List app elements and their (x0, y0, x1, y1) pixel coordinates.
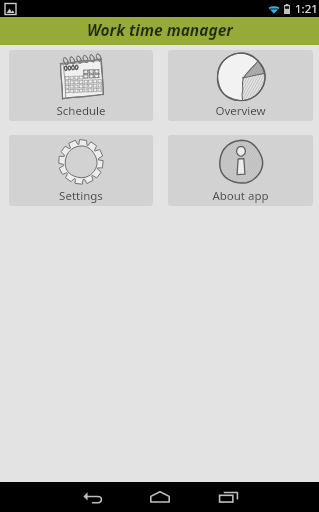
button[interactable]: Back (58, 482, 126, 512)
staticText: About app (212, 188, 269, 204)
staticText: Work time manager (87, 19, 233, 40)
button[interactable]: About app (168, 135, 313, 206)
button[interactable]: Schedule (9, 50, 153, 121)
staticText: 1:21 (295, 1, 318, 17)
staticText: Overview (215, 103, 266, 119)
button[interactable]: Overview (168, 50, 313, 121)
staticText: Schedule (56, 103, 106, 119)
button[interactable]: Settings (9, 135, 153, 206)
button[interactable]: Home (126, 482, 194, 512)
staticText: Settings (59, 188, 103, 204)
button[interactable]: Recents (194, 482, 262, 512)
